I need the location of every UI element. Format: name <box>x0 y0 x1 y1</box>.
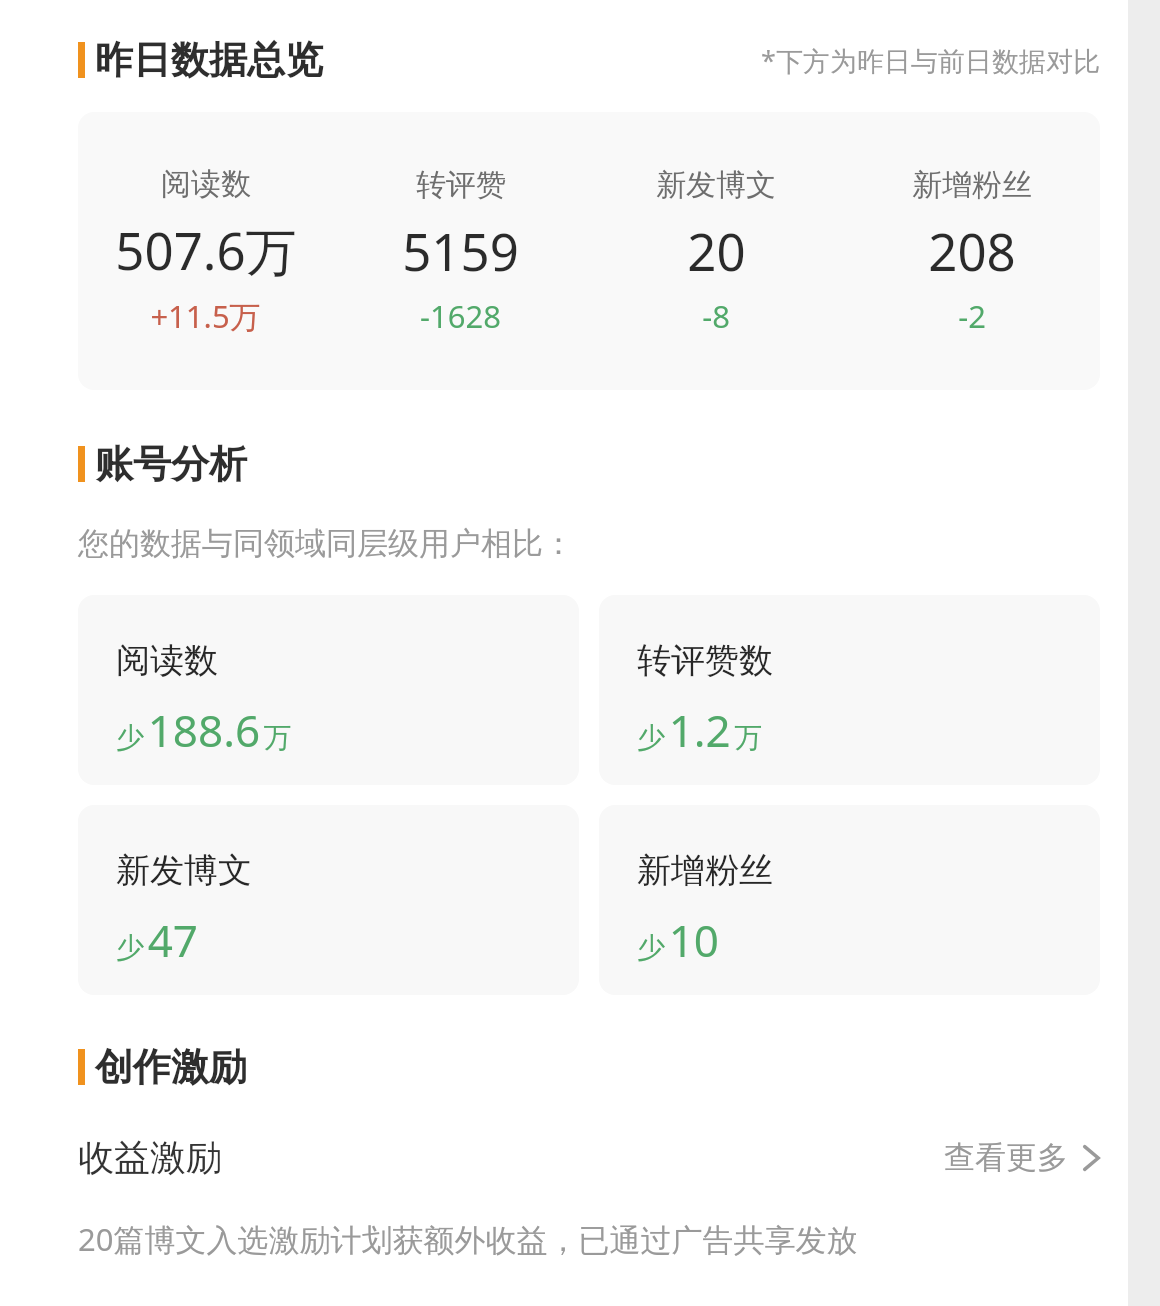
staticText: 您的数据与同领域同层级用户相比： <box>78 524 574 563</box>
button[interactable]: 阅读数 <box>78 112 1100 390</box>
staticText: 5159 <box>402 216 519 285</box>
staticText: 昨日数据总览 <box>95 36 323 84</box>
staticText: +11.5万 <box>150 295 261 337</box>
staticText: 收益激励 <box>78 1135 222 1180</box>
staticText: 少 47 <box>116 910 198 970</box>
staticText: 转评赞 <box>416 166 506 204</box>
staticText: 20篇博文入选激励计划获额外收益，已通过广告共享发放 <box>78 1218 858 1260</box>
staticText: 转评赞数 <box>637 639 773 682</box>
other: 查看更多 <box>1082 1143 1100 1173</box>
staticText: *下方为昨日与前日数据对比 <box>761 42 1100 79</box>
staticText: -2 <box>958 295 986 337</box>
staticText: 208 <box>928 216 1016 285</box>
staticText: 少 1.2 万 <box>637 700 763 760</box>
button[interactable]: 转评赞数 <box>599 595 1100 785</box>
staticText: 少 188.6 万 <box>116 700 292 760</box>
staticText: 新增粉丝 <box>637 849 773 892</box>
staticText: 创作激励 <box>95 1043 247 1091</box>
button[interactable]: 阅读数 <box>78 595 579 785</box>
staticText: 少 10 <box>637 910 719 970</box>
staticText: 阅读数 <box>116 639 218 682</box>
staticText: 20 <box>687 216 746 285</box>
staticText: 507.6万 <box>115 215 297 285</box>
staticText: -8 <box>702 295 730 337</box>
staticText: 新发博文 <box>656 166 776 204</box>
button[interactable]: 新增粉丝 <box>599 805 1100 995</box>
button[interactable]: 新发博文 <box>78 805 579 995</box>
staticText: 账号分析 <box>95 440 247 488</box>
staticText: 阅读数 <box>161 165 251 203</box>
staticText: 新增粉丝 <box>912 166 1032 204</box>
staticText: 查看更多 <box>944 1138 1068 1177</box>
staticText: -1628 <box>420 295 501 337</box>
button[interactable]: 收益激励 <box>0 1129 1128 1186</box>
staticText: 新发博文 <box>116 849 252 892</box>
